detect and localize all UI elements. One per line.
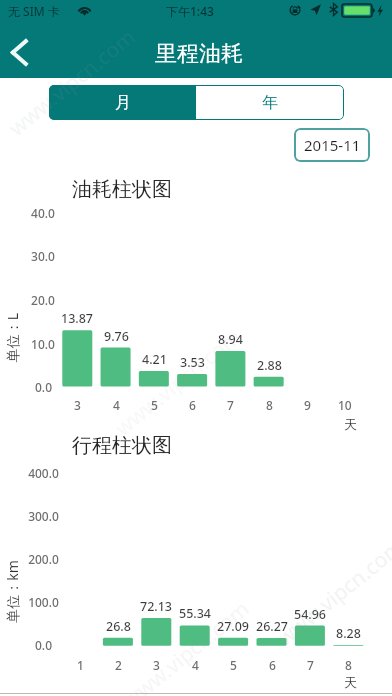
staticText: 27.09 <box>217 618 250 635</box>
staticText: www.vipcn.com <box>107 587 265 696</box>
staticText: www.vipcn.com <box>0 15 151 150</box>
staticText: 9.76 <box>104 328 129 345</box>
staticText: 年 <box>262 93 278 113</box>
staticText: 下午1:43 <box>166 3 214 19</box>
staticText: 54.96 <box>294 606 327 623</box>
staticText: 300.0 <box>28 508 59 524</box>
button[interactable]: Back <box>0 32 38 72</box>
staticText: 4 <box>192 657 199 673</box>
staticText: 里程油耗 <box>155 40 243 68</box>
staticText: 月 <box>115 93 131 113</box>
staticText: 26.8 <box>106 618 131 635</box>
staticText: 13.87 <box>61 310 94 327</box>
staticText: 9 <box>304 397 311 413</box>
button[interactable]: 年 <box>196 85 344 120</box>
staticText: 油耗柱状图 <box>72 177 172 202</box>
staticText: 3 <box>153 657 160 673</box>
staticText: 3.53 <box>180 354 205 371</box>
staticText: 行程柱状图 <box>72 433 172 458</box>
staticText: 7 <box>307 657 314 673</box>
staticText: 4 <box>113 397 120 413</box>
staticText: 1 <box>77 657 84 673</box>
staticText: 天 <box>344 674 357 690</box>
staticText: 2.88 <box>257 357 282 374</box>
staticText: 2015-11 <box>304 135 361 155</box>
staticText: www.vipcn.com <box>99 315 257 450</box>
staticText: 3 <box>74 397 81 413</box>
staticText: 2 <box>115 657 122 673</box>
staticText: 72.13 <box>140 598 173 615</box>
button[interactable]: 月 <box>49 85 196 120</box>
staticText: 天 <box>344 416 357 432</box>
staticText: 26.27 <box>256 618 289 635</box>
staticText: 5 <box>230 657 237 673</box>
staticText: 8 <box>345 657 352 673</box>
staticText: 10 <box>338 397 352 413</box>
staticText: 0.0 <box>35 637 52 653</box>
staticText: 100.0 <box>28 594 59 610</box>
staticText: 7 <box>227 397 234 413</box>
button[interactable]: 2015-11 <box>294 128 370 162</box>
staticText: 0.0 <box>35 379 52 395</box>
staticText: 单位：km <box>2 541 21 641</box>
staticText: 8.94 <box>218 331 243 348</box>
staticText: 30.0 <box>31 248 55 264</box>
staticText: 8.28 <box>336 625 361 642</box>
staticText: 8 <box>266 397 273 413</box>
staticText: 200.0 <box>28 551 59 567</box>
staticText: 无 SIM 卡 <box>8 3 60 19</box>
staticText: 6 <box>189 397 196 413</box>
staticText: 6 <box>269 657 276 673</box>
staticText: www.vipcn.com <box>261 525 392 660</box>
staticText: 400.0 <box>28 465 59 481</box>
staticText: 5 <box>151 397 158 413</box>
staticText: 40.0 <box>31 205 55 221</box>
staticText: 55.34 <box>179 605 212 622</box>
staticText: 10.0 <box>31 336 55 352</box>
staticText: 单位：L <box>2 287 21 387</box>
staticText: 4.21 <box>142 351 167 368</box>
staticText: 20.0 <box>31 292 55 308</box>
